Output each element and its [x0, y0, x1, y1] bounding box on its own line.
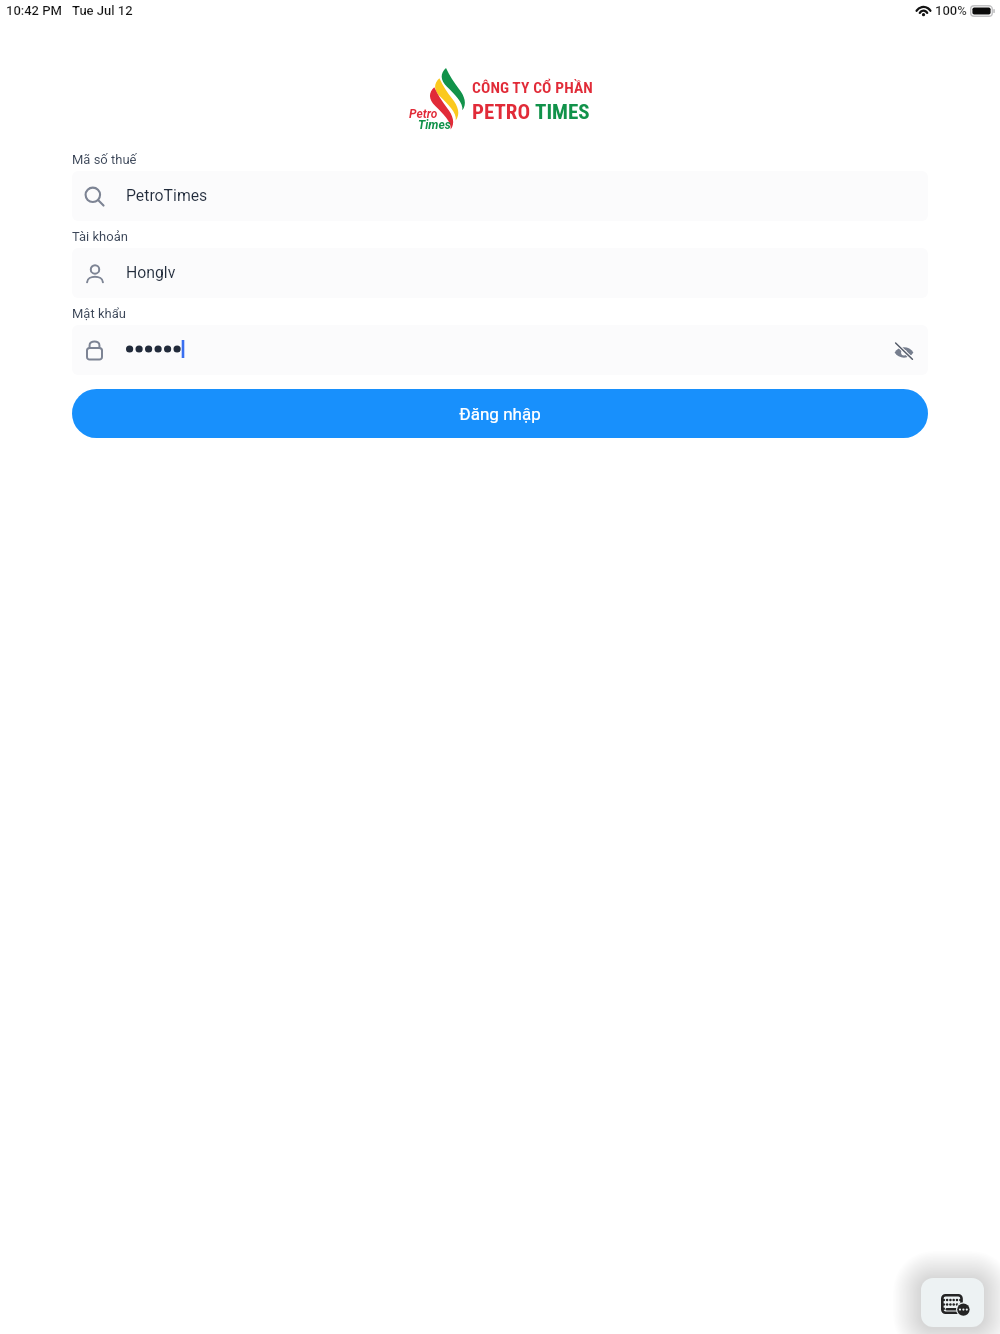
staticText: PetroTimes: [126, 186, 208, 205]
staticText: Petro: [409, 107, 438, 121]
staticText: Đăng nhập: [459, 404, 541, 424]
staticText: Mã số thuế: [72, 152, 137, 167]
staticText: TIMES: [535, 100, 590, 125]
button[interactable]: Hide keyboard: [921, 1278, 984, 1327]
staticText: 100%: [935, 3, 967, 18]
staticText: Tue Jul 12: [72, 3, 133, 18]
staticText: Honglv: [126, 263, 176, 282]
staticText: PETRO: [472, 100, 535, 125]
staticText: Tài khoản: [72, 229, 128, 244]
button[interactable]: Đăng nhập: [72, 389, 928, 438]
button[interactable]: PetroTimes: [72, 171, 928, 221]
staticText: 10:42 PM: [6, 3, 62, 18]
button[interactable]: Hiện mật khẩu: [72, 325, 928, 375]
staticText: Times: [418, 118, 451, 132]
button[interactable]: Honglv: [72, 248, 928, 298]
staticText: Mật khẩu: [72, 306, 126, 321]
button[interactable]: Hiện mật khẩu: [880, 326, 928, 375]
staticText: CÔNG TY CỔ PHẦN: [472, 79, 593, 97]
